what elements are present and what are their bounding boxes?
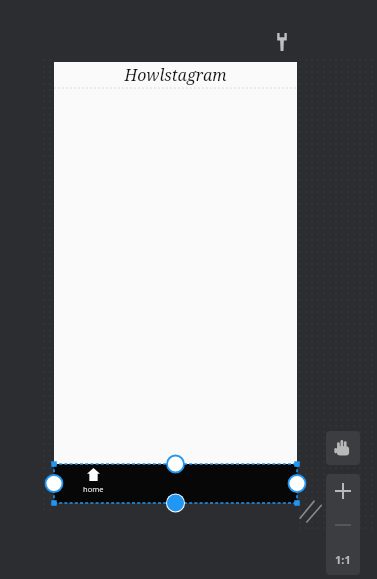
- staticText: Howlstagram: [54, 64, 297, 505]
- button[interactable]: Pan tool: [326, 431, 360, 465]
- button[interactable]: Settings: [270, 30, 294, 54]
- button[interactable]: 1:1: [326, 542, 360, 575]
- button[interactable]: home: [74, 468, 112, 494]
- button[interactable]: Zoom out: [326, 508, 360, 542]
- button[interactable]: home: [54, 464, 297, 503]
- button[interactable]: Zoom in: [326, 474, 360, 508]
- staticText: home: [83, 484, 104, 494]
- staticText: 1:1: [335, 552, 351, 567]
